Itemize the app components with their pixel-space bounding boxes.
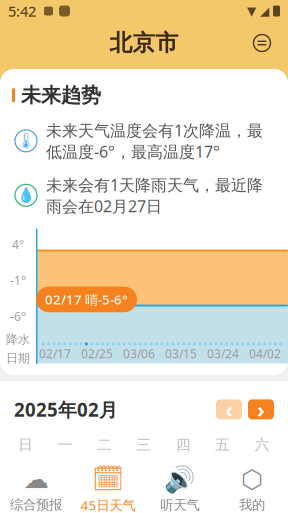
- staticText: 未来趋势: [21, 83, 101, 108]
- staticText: ‹: [225, 395, 233, 423]
- staticText: 04/02: [249, 346, 281, 361]
- staticText: 03/06: [123, 346, 155, 361]
- button[interactable]: 🗓: [72, 465, 144, 513]
- staticText: ▼: [247, 4, 256, 18]
- staticText: 未来天气温度会有1次降温，最低温度-6°，最高温度17°: [46, 120, 263, 162]
- staticText: 5:42: [8, 1, 36, 21]
- staticText: 03/24: [207, 346, 239, 361]
- staticText: ⬡: [241, 465, 263, 494]
- staticText: 20: [175, 464, 191, 483]
- staticText: 三: [136, 436, 151, 454]
- staticText: 降水: [6, 332, 30, 347]
- staticText: 二: [97, 436, 112, 454]
- staticText: 北京市: [109, 29, 178, 57]
- staticText: 综合预报: [10, 497, 62, 513]
- staticText: ◢: [260, 4, 269, 18]
- staticText: 🌡: [16, 132, 35, 149]
- button[interactable]: ⬡: [216, 465, 288, 513]
- staticText: -1°: [10, 272, 26, 288]
- staticText: 02/25: [81, 346, 113, 361]
- staticText: 日期: [6, 351, 30, 366]
- staticText: 🗓: [92, 464, 124, 493]
- staticText: 我的: [239, 497, 265, 513]
- staticText: 听天气: [160, 497, 199, 513]
- staticText: 🔊: [164, 465, 196, 494]
- staticText: 一: [58, 436, 73, 454]
- staticText: -6°: [10, 308, 26, 324]
- button[interactable]: 上个月: [216, 399, 242, 419]
- button[interactable]: 🔊: [144, 465, 216, 513]
- staticText: 02/17 晴-5-6°: [45, 291, 128, 308]
- button[interactable]: 下个月: [248, 399, 274, 419]
- staticText: 未来会有1天降雨天气，最近降雨会在02月27日: [46, 174, 263, 217]
- staticText: ›: [257, 395, 265, 423]
- button[interactable]: 切换城市: [244, 25, 280, 61]
- staticText: 💧: [17, 187, 35, 204]
- staticText: 五: [215, 436, 230, 454]
- staticText: 02/17: [39, 346, 71, 361]
- staticText: 2025年02月: [14, 397, 118, 422]
- staticText: 今天: [90, 464, 120, 482]
- staticText: 四: [176, 436, 191, 454]
- staticText: 03/15: [165, 346, 197, 361]
- staticText: ☁: [23, 465, 48, 494]
- staticText: 4°: [12, 236, 24, 252]
- button[interactable]: ☁: [0, 465, 72, 513]
- staticText: 22: [254, 464, 270, 483]
- staticText: 45日天气: [80, 496, 135, 513]
- staticText: 日: [18, 436, 33, 454]
- staticText: 六: [255, 436, 270, 454]
